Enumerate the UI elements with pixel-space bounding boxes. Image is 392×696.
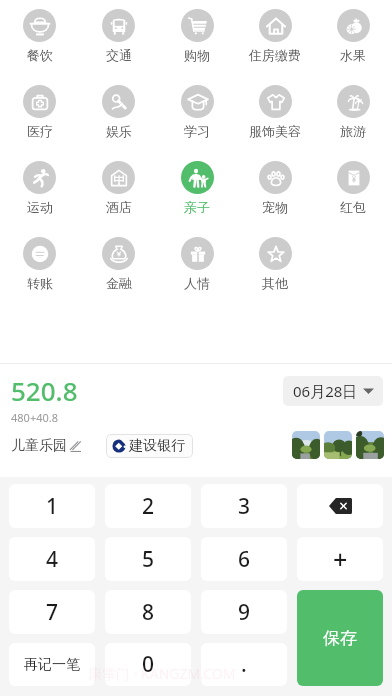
button[interactable]: 运动 bbox=[0, 152, 79, 228]
staticText: 水果 bbox=[340, 47, 366, 63]
button[interactable]: Photo 2 bbox=[324, 431, 352, 459]
staticText: 购物 bbox=[184, 47, 210, 63]
staticText: 服饰美容 bbox=[249, 123, 301, 139]
button[interactable]: 保存 bbox=[297, 590, 383, 686]
staticText: 7 bbox=[46, 598, 59, 627]
button[interactable]: Photo 3 bbox=[356, 431, 384, 459]
staticText: 康掌门 · KANGZM.COM bbox=[88, 664, 236, 683]
button[interactable]: 8 bbox=[105, 590, 191, 634]
button[interactable]: 2 bbox=[105, 484, 191, 528]
staticText: 餐饮 bbox=[27, 47, 53, 63]
staticText: 其他 bbox=[262, 275, 288, 291]
button[interactable]: Photo 1 bbox=[292, 431, 320, 459]
button[interactable]: 水果 bbox=[314, 0, 392, 76]
button[interactable]: 红包 bbox=[314, 152, 392, 228]
staticText: 娱乐 bbox=[106, 123, 132, 139]
staticText: 480+40.8 bbox=[11, 410, 58, 425]
button[interactable]: 6 bbox=[201, 537, 287, 581]
button[interactable]: 转账 bbox=[0, 228, 79, 304]
staticText: 再记一笔 bbox=[24, 656, 80, 674]
button[interactable]: 服饰美容 bbox=[236, 76, 314, 152]
button[interactable]: 医疗 bbox=[0, 76, 79, 152]
button[interactable]: 购物 bbox=[158, 0, 236, 76]
button[interactable]: + bbox=[297, 537, 383, 581]
staticText: 金融 bbox=[106, 275, 132, 291]
staticText: 旅游 bbox=[340, 123, 366, 139]
button[interactable]: 住房缴费 bbox=[236, 0, 314, 76]
button[interactable]: 3 bbox=[201, 484, 287, 528]
staticText: + bbox=[333, 542, 348, 576]
staticText: 医疗 bbox=[27, 123, 53, 139]
button[interactable]: 其他 bbox=[236, 228, 314, 304]
button[interactable]: 餐饮 bbox=[0, 0, 79, 76]
button[interactable]: 1 bbox=[9, 484, 95, 528]
staticText: 2 bbox=[142, 492, 155, 521]
staticText: 520.8 bbox=[11, 373, 78, 408]
button[interactable]: Delete bbox=[297, 484, 383, 528]
button[interactable]: 金融 bbox=[79, 228, 158, 304]
staticText: 学习 bbox=[184, 123, 210, 139]
button[interactable]: 建设银行 bbox=[106, 434, 193, 458]
staticText: 转账 bbox=[27, 275, 53, 291]
staticText: . bbox=[241, 650, 247, 679]
staticText: 8 bbox=[142, 598, 155, 627]
staticText: 4 bbox=[46, 545, 59, 574]
button[interactable]: 旅游 bbox=[314, 76, 392, 152]
staticText: 交通 bbox=[106, 47, 132, 63]
button[interactable]: 酒店 bbox=[79, 152, 158, 228]
staticText: 06月28日 bbox=[293, 381, 358, 401]
staticText: 亲子 bbox=[184, 199, 210, 215]
staticText: 红包 bbox=[340, 199, 366, 215]
staticText: 人情 bbox=[184, 275, 210, 291]
staticText: 宠物 bbox=[262, 199, 288, 215]
staticText: 1 bbox=[46, 492, 59, 521]
staticText: 0 bbox=[142, 650, 155, 679]
button[interactable]: . bbox=[201, 643, 287, 686]
staticText: 3 bbox=[238, 492, 251, 521]
staticText: 酒店 bbox=[106, 199, 132, 215]
button[interactable]: 娱乐 bbox=[79, 76, 158, 152]
button[interactable]: 9 bbox=[201, 590, 287, 634]
button[interactable]: 再记一笔 bbox=[9, 643, 95, 686]
other: Edit note bbox=[70, 441, 81, 452]
staticText: 6 bbox=[238, 545, 251, 574]
button[interactable]: 0 bbox=[105, 643, 191, 686]
button[interactable]: 7 bbox=[9, 590, 95, 634]
button[interactable]: 宠物 bbox=[236, 152, 314, 228]
button[interactable]: 交通 bbox=[79, 0, 158, 76]
button[interactable]: 4 bbox=[9, 537, 95, 581]
staticText: 保存 bbox=[323, 628, 357, 649]
staticText: 9 bbox=[238, 598, 251, 627]
button[interactable]: 5 bbox=[105, 537, 191, 581]
staticText: 住房缴费 bbox=[249, 47, 301, 63]
staticText: 运动 bbox=[27, 199, 53, 215]
button[interactable]: 儿童乐园 bbox=[11, 434, 81, 458]
staticText: 儿童乐园 bbox=[11, 437, 67, 455]
button[interactable]: 学习 bbox=[158, 76, 236, 152]
staticText: 建设银行 bbox=[129, 437, 185, 455]
button[interactable]: 06月28日 bbox=[283, 376, 383, 406]
button[interactable]: 亲子 bbox=[158, 152, 236, 228]
staticText: 5 bbox=[142, 545, 155, 574]
button[interactable]: 人情 bbox=[158, 228, 236, 304]
